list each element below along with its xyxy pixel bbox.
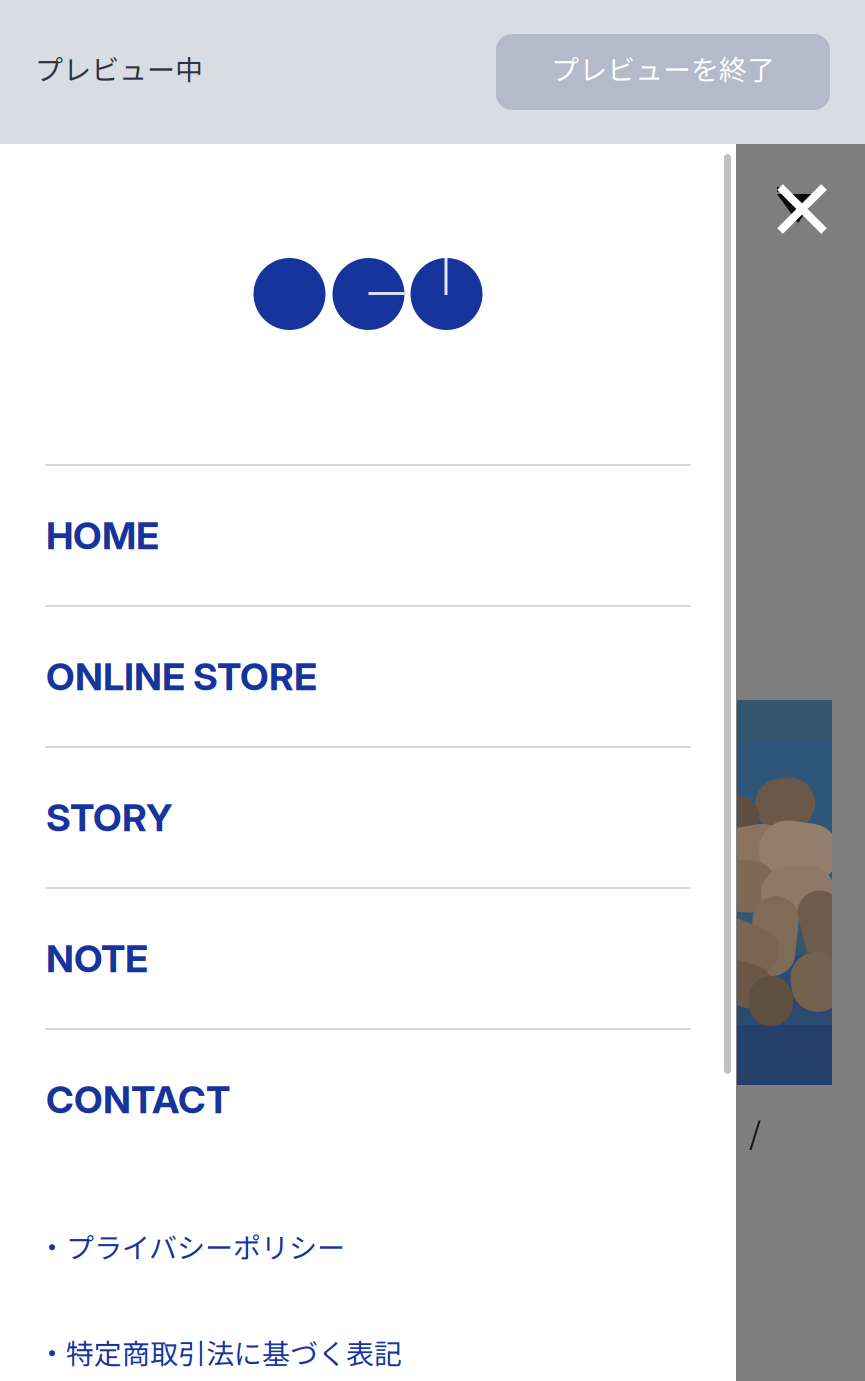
staticText: STORY	[46, 794, 173, 840]
button[interactable]: NOTE	[0, 889, 736, 1028]
button[interactable]: Close menu	[777, 187, 851, 261]
staticText: ・特定商取引法に基づく表記	[38, 1332, 402, 1372]
staticText: CONTACT	[46, 1076, 230, 1122]
staticText: ・プライバシーポリシー	[38, 1226, 345, 1266]
button[interactable]: ・プライバシーポリシー	[0, 1224, 736, 1268]
staticText: ONLINE STORE	[46, 653, 317, 699]
button[interactable]: ・特定商取引法に基づく表記	[0, 1330, 736, 1374]
staticText: プレビュー中	[35, 48, 203, 88]
staticText: HOME	[46, 512, 159, 558]
button[interactable]: HOME	[0, 466, 736, 605]
button[interactable]: プレビューを終了	[496, 34, 830, 110]
staticText: NOTE	[46, 935, 148, 981]
staticText: /	[749, 1109, 761, 1153]
button[interactable]: ONLINE STORE	[0, 607, 736, 746]
button[interactable]: CONTACT	[0, 1030, 736, 1169]
staticText: プレビューを終了	[551, 48, 775, 88]
button[interactable]: STORY	[0, 748, 736, 887]
